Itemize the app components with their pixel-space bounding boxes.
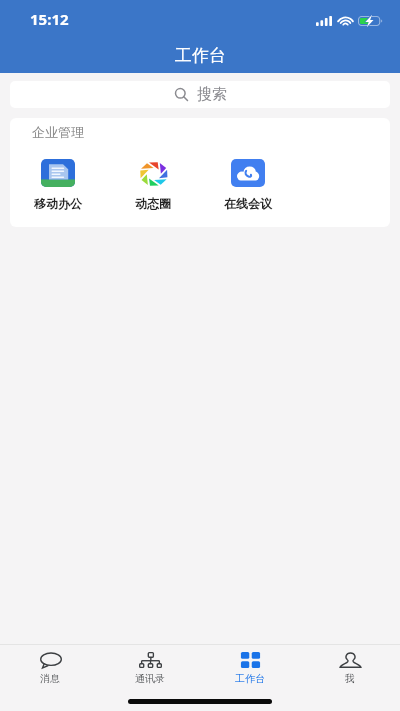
button[interactable]: 搜索 xyxy=(10,81,390,108)
button[interactable]: 移动办公 xyxy=(10,159,105,211)
staticText: 企业管理 xyxy=(32,124,84,140)
button[interactable]: 消息 xyxy=(0,645,100,690)
staticText: 搜索 xyxy=(197,85,227,104)
button[interactable]: 通讯录 xyxy=(100,645,200,690)
staticText: 动态圈 xyxy=(135,196,171,211)
staticText: 消息 xyxy=(40,672,60,685)
staticText: 我 xyxy=(345,672,355,685)
button[interactable]: 工作台 xyxy=(200,645,300,690)
button[interactable]: 动态圈 xyxy=(105,159,200,211)
staticText: 通讯录 xyxy=(135,672,165,685)
staticText: 工作台 xyxy=(235,672,265,685)
button[interactable]: 我 xyxy=(300,645,400,690)
staticText: 15:12 xyxy=(30,9,69,29)
staticText: 工作台 xyxy=(175,45,226,66)
button[interactable]: 在线会议 xyxy=(200,159,295,211)
staticText: 在线会议 xyxy=(224,196,272,211)
staticText: 移动办公 xyxy=(34,196,82,211)
